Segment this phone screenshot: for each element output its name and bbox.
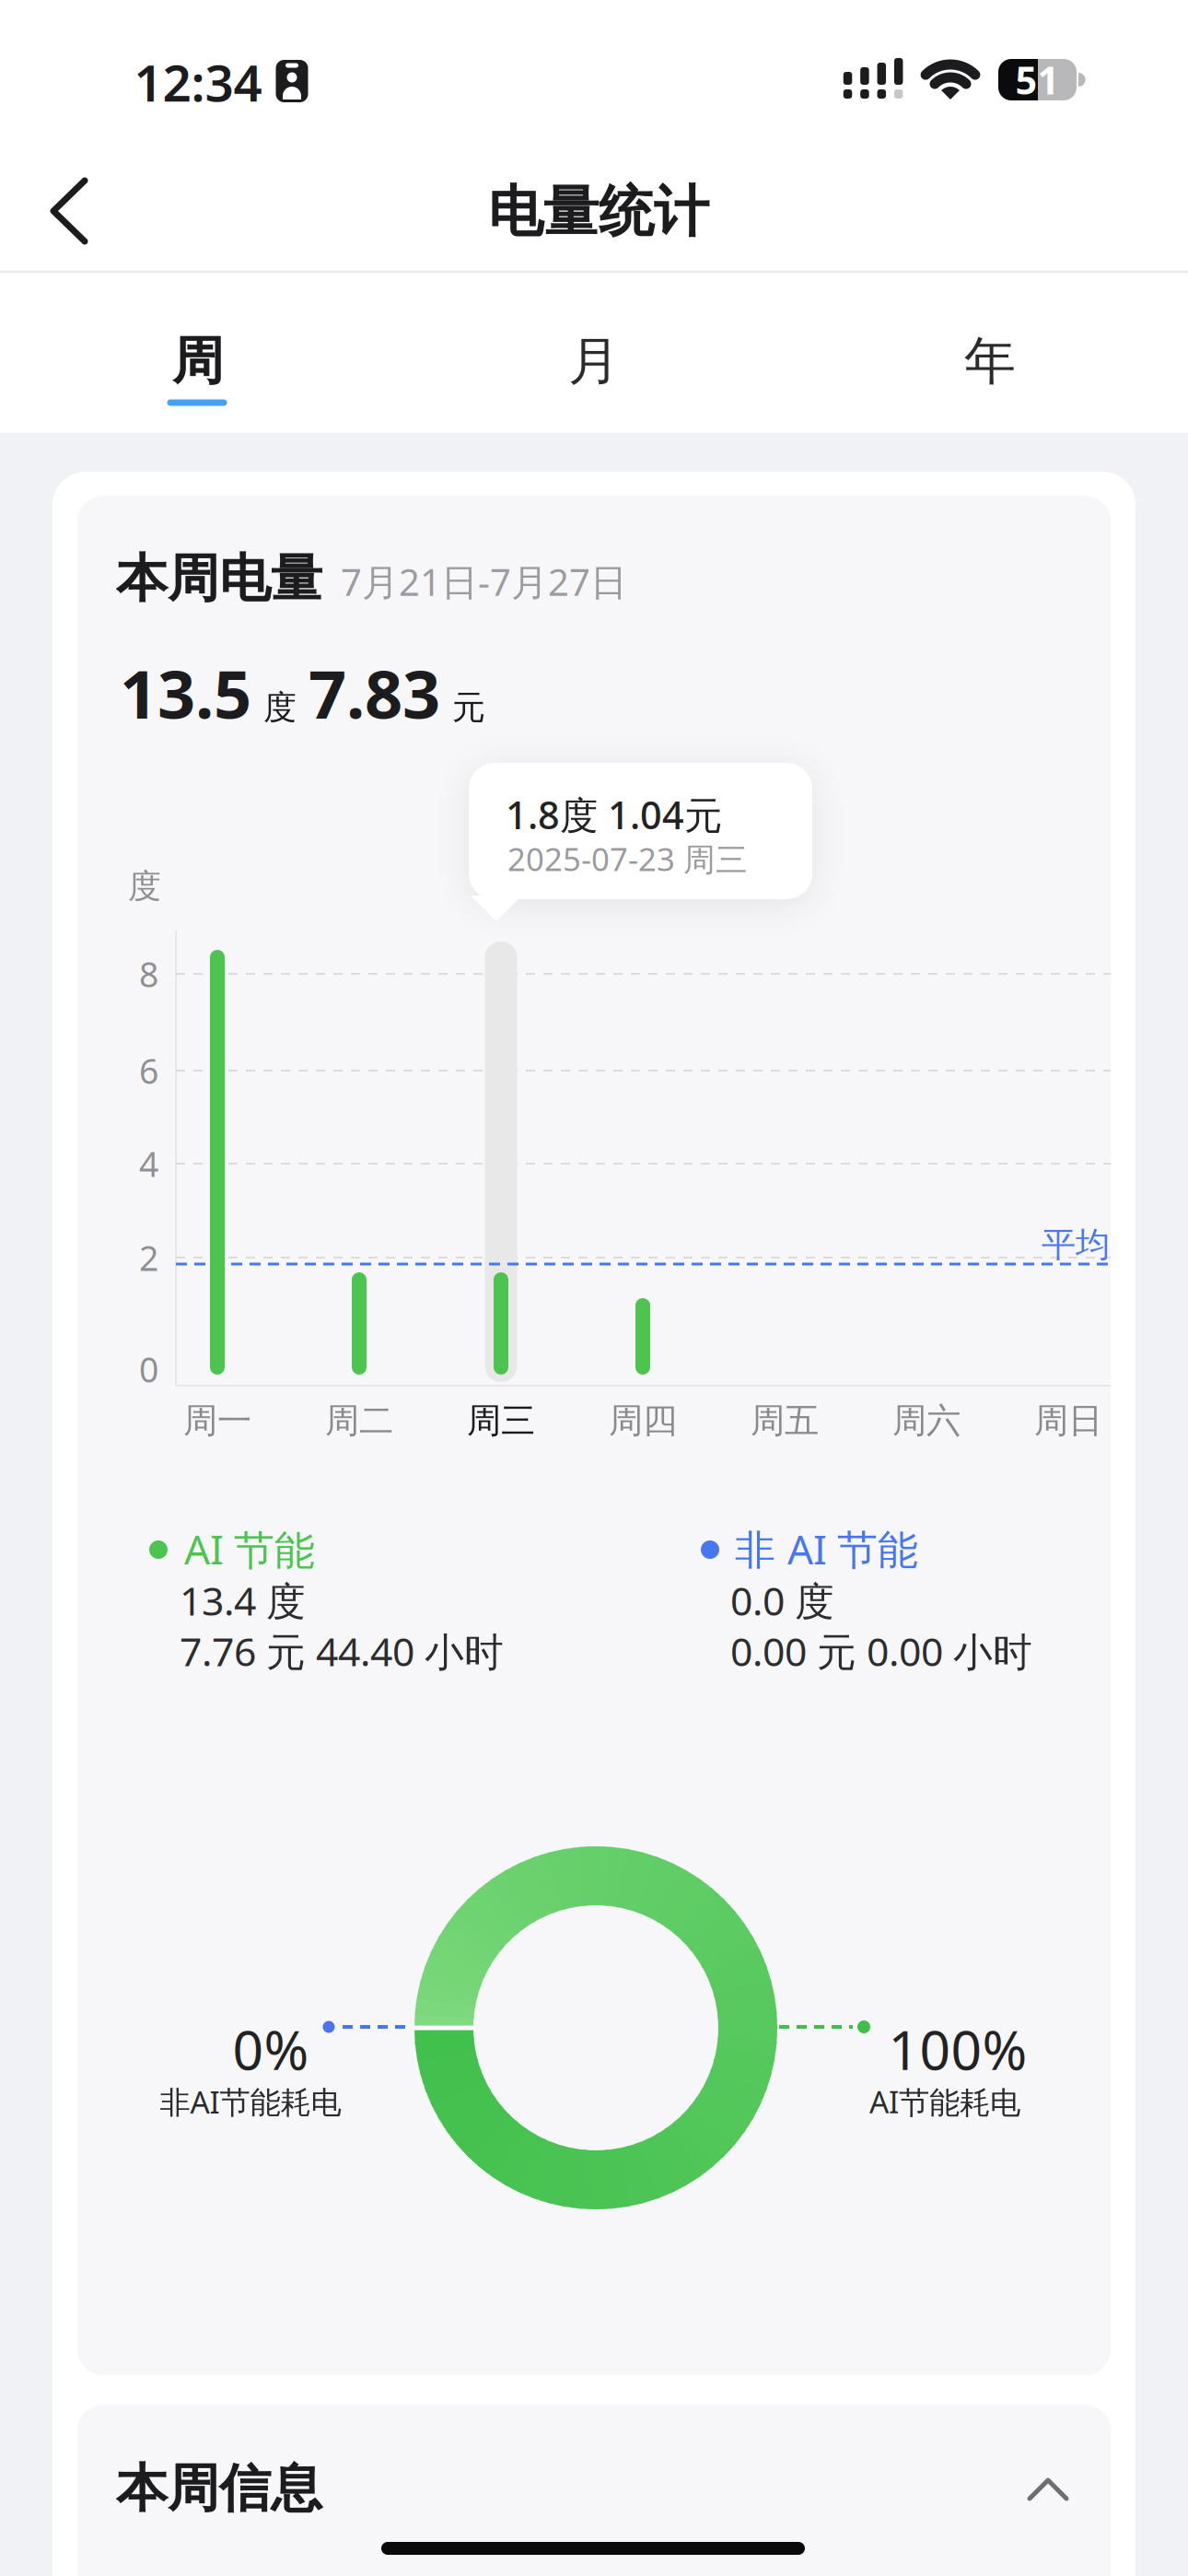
staticText: 7月21日-7月27日 xyxy=(322,557,627,606)
staticText: 周 xyxy=(172,329,224,393)
staticText: 1.8度 1.04元 xyxy=(506,789,722,840)
staticText: 0.00 元 0.00 小时 xyxy=(730,1625,1032,1677)
staticText: 元 xyxy=(452,687,485,728)
button[interactable]: Back xyxy=(26,173,112,249)
staticText: 非 AI 节能 xyxy=(735,1522,918,1576)
staticText: AI 节能 xyxy=(184,1522,315,1576)
staticText: 2 xyxy=(139,1235,158,1280)
staticText: 4 xyxy=(139,1141,158,1186)
staticText: 100% xyxy=(888,2013,1027,2085)
staticText: 电量统计 xyxy=(488,178,709,246)
staticText: 周三 xyxy=(467,1400,535,1442)
staticText: 7.83 xyxy=(309,649,440,737)
staticText: 13.5 xyxy=(120,649,251,737)
staticText: 周四 xyxy=(609,1400,677,1442)
staticText: 周五 xyxy=(751,1400,819,1442)
staticText: 0% xyxy=(233,2013,309,2085)
staticText: 7.76 元 44.40 小时 xyxy=(180,1625,504,1677)
staticText: 周日 xyxy=(1034,1400,1102,1442)
button[interactable]: 本周信息 xyxy=(77,2405,1111,2576)
staticText: 13.4 度 xyxy=(180,1574,306,1626)
staticText: 6 xyxy=(139,1048,158,1093)
staticText: 本周信息 xyxy=(116,2457,322,2520)
staticText: 2025-07-23 周三 xyxy=(507,837,748,880)
staticText: 度 xyxy=(128,866,161,907)
staticText: 51 xyxy=(1015,54,1060,105)
staticText: 周二 xyxy=(325,1400,393,1442)
staticText: 月 xyxy=(568,329,620,393)
button[interactable]: 月 xyxy=(396,281,792,441)
staticText: 0.0 度 xyxy=(730,1574,834,1626)
staticText: 8 xyxy=(139,951,158,997)
staticText: 12:34 xyxy=(134,49,262,115)
button[interactable]: 年 xyxy=(792,281,1188,441)
staticText: 平均 xyxy=(1042,1224,1110,1266)
staticText: 0 xyxy=(139,1346,158,1392)
staticText: 本周电量 xyxy=(116,547,322,610)
staticText: 周六 xyxy=(892,1400,961,1442)
staticText: 周一 xyxy=(183,1400,251,1442)
staticText: 年 xyxy=(964,329,1016,393)
staticText: 度 xyxy=(263,687,297,728)
staticText: 非AI节能耗电 xyxy=(160,2081,341,2122)
button[interactable]: 周 xyxy=(0,281,396,441)
staticText: AI节能耗电 xyxy=(869,2081,1020,2122)
